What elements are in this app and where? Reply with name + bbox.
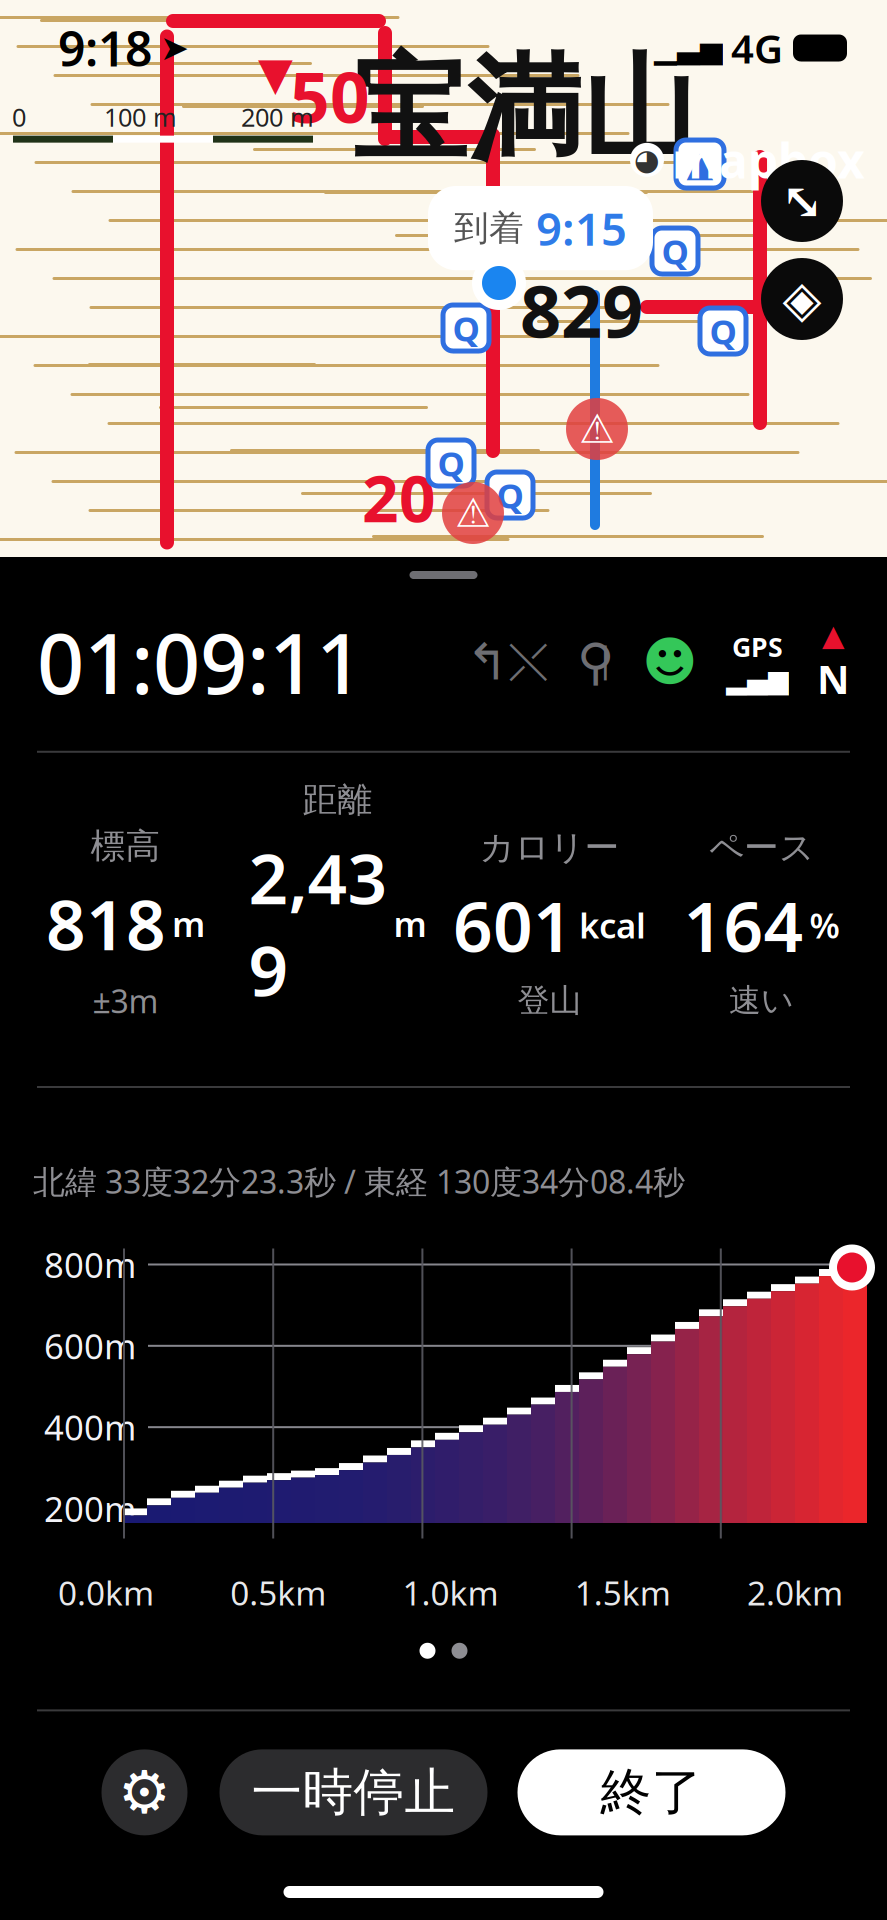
staticText: 0.5km — [230, 1570, 326, 1615]
staticText: ◕ — [634, 143, 660, 176]
staticText: 終了 — [600, 1761, 702, 1823]
button[interactable]: Map layers — [761, 258, 843, 340]
staticText: 1.0km — [402, 1570, 498, 1615]
staticText: ▼ — [258, 48, 293, 99]
staticText: ↰⤬ — [466, 633, 549, 691]
staticText: N — [817, 652, 850, 705]
staticText: m — [172, 900, 205, 946]
button[interactable]: Fullscreen map — [761, 160, 843, 242]
button[interactable]: 終了 — [517, 1749, 785, 1835]
staticText: 到着 — [454, 207, 524, 249]
staticText: カロリー — [479, 826, 619, 869]
staticText: 距離 — [302, 779, 372, 821]
staticText: Q — [437, 440, 464, 486]
staticText: 2,439 — [248, 831, 387, 1015]
staticText: 601 — [453, 879, 573, 971]
staticText: 50 — [290, 50, 370, 142]
staticText: 400m — [44, 1404, 136, 1450]
button[interactable]: 一時停止 — [219, 1749, 487, 1835]
button[interactable]: Settings — [101, 1749, 187, 1835]
staticText: 01:09:11 — [37, 607, 363, 717]
staticText: 800m — [44, 1241, 136, 1287]
staticText: kcal — [579, 902, 646, 948]
staticText: 宝満山 — [352, 40, 697, 181]
staticText: 100 m — [104, 100, 177, 134]
staticText: ⚙ — [118, 1759, 171, 1826]
staticText: ➤ — [160, 28, 189, 68]
staticText: 一時停止 — [251, 1761, 455, 1823]
staticText: 600m — [44, 1323, 136, 1369]
staticText: 829 — [520, 262, 643, 358]
staticText: ▲ — [686, 144, 713, 184]
staticText: Q — [661, 228, 688, 274]
staticText: ±3m — [92, 979, 158, 1022]
staticText: 北緯 33度32分23.3秒 / 東経 130度34分08.4秒 — [33, 1160, 685, 1202]
staticText: ⚠ — [455, 490, 491, 536]
staticText: 9:18 — [58, 16, 152, 80]
staticText: 200m — [44, 1485, 136, 1531]
staticText: ◈ — [782, 270, 821, 328]
staticText: Q — [496, 472, 523, 518]
staticText: 0 — [12, 100, 26, 134]
staticText: ▲ — [822, 619, 845, 652]
staticText: ☻ — [642, 632, 698, 692]
staticText: ▁▃▅ — [654, 31, 723, 65]
staticText: 2.0km — [747, 1570, 843, 1615]
staticText: 20 — [362, 455, 436, 540]
staticText: 818 — [46, 877, 166, 969]
staticText: mapbox — [672, 128, 865, 192]
staticText: GPS — [732, 629, 783, 664]
staticText: 標高 — [90, 825, 160, 867]
staticText: 9:15 — [536, 198, 627, 258]
staticText: 1.5km — [575, 1570, 671, 1615]
staticText: 200 m — [241, 100, 314, 134]
staticText: ⚠ — [579, 406, 615, 452]
staticText: 登山 — [517, 981, 581, 1020]
staticText: 4G — [731, 21, 783, 74]
staticText: ⚲⃒ — [577, 633, 614, 691]
staticText: Q — [709, 308, 736, 354]
staticText: ▂▄▆ — [726, 664, 789, 695]
staticText: % — [809, 902, 839, 948]
staticText: ペース — [709, 826, 814, 869]
staticText: m — [393, 900, 426, 946]
staticText: Q — [452, 305, 479, 351]
staticText: 0.0km — [58, 1570, 154, 1615]
staticText: 164 — [683, 879, 803, 971]
staticText: 速い — [729, 981, 794, 1020]
staticText: ⤡ — [781, 172, 823, 230]
